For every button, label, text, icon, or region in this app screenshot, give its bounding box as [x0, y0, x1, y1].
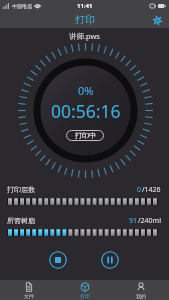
staticText: 打印 [80, 293, 90, 299]
button[interactable]: 我的 [113, 280, 169, 300]
staticText: 11:41 [77, 2, 93, 10]
staticText: 讲师.pws [69, 31, 100, 41]
staticText: 0% [78, 83, 94, 98]
staticText: 0 [137, 185, 142, 195]
staticText: 打印中 [75, 131, 96, 140]
button[interactable]: Settings [150, 13, 164, 27]
staticText: 我的 [136, 293, 146, 299]
button[interactable]: Stop [49, 251, 67, 269]
staticText: 所需树脂 [7, 216, 35, 225]
staticText: 打印 [75, 13, 95, 26]
staticText: 91 [129, 216, 138, 226]
button[interactable]: Pause [101, 251, 119, 269]
button[interactable]: 文件 [0, 280, 57, 300]
staticText: /1426 [142, 185, 161, 195]
staticText: 中国电信 [12, 3, 32, 9]
staticText: 文件 [24, 293, 34, 299]
staticText: 00:56:16 [51, 99, 121, 123]
staticText: 打印层数 [7, 185, 35, 194]
staticText: /240ml [138, 216, 161, 226]
button[interactable]: 打印 [57, 280, 113, 300]
